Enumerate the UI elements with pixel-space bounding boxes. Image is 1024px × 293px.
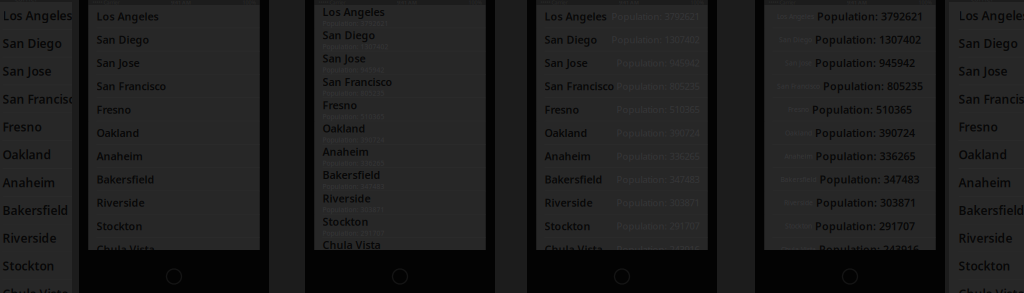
button[interactable]: Chula Vista bbox=[764, 238, 935, 261]
button[interactable]: Oakland bbox=[949, 141, 1024, 169]
button[interactable]: Los Angeles bbox=[88, 5, 259, 28]
staticText: Population: 390724 bbox=[322, 135, 384, 144]
button[interactable]: San Jose bbox=[314, 52, 485, 75]
button[interactable]: San Francisco bbox=[88, 75, 259, 98]
button[interactable]: Anaheim bbox=[536, 145, 707, 168]
staticText: Population: 336265 bbox=[815, 149, 915, 163]
staticText: Population: 243916 bbox=[616, 243, 699, 255]
button[interactable]: Stockton bbox=[949, 252, 1024, 280]
button[interactable]: San Jose bbox=[0, 58, 198, 85]
button[interactable]: San Diego bbox=[88, 28, 259, 52]
button[interactable]: Bakersfield bbox=[0, 197, 198, 224]
button[interactable]: Riverside bbox=[0, 225, 198, 252]
staticText: Oakland bbox=[3, 147, 52, 163]
button[interactable]: San Diego bbox=[764, 28, 935, 52]
button[interactable]: Bakersfield bbox=[88, 168, 259, 191]
button[interactable]: Home bbox=[611, 266, 632, 287]
button[interactable]: San Francisco bbox=[0, 85, 198, 113]
staticText: Bakersfield bbox=[544, 172, 602, 186]
button[interactable]: Fresno bbox=[536, 98, 707, 121]
button[interactable]: Oakland bbox=[88, 121, 259, 145]
staticText: Population: 510365 bbox=[616, 103, 699, 116]
staticText: Chula Vista bbox=[3, 286, 69, 293]
button[interactable]: Bakersfield bbox=[314, 168, 485, 191]
button[interactable]: Stockton bbox=[536, 215, 707, 238]
staticText: Population: 805235 bbox=[322, 89, 384, 98]
button[interactable]: Chula Vista bbox=[949, 280, 1024, 293]
button[interactable]: Anaheim bbox=[764, 145, 935, 168]
button[interactable]: Los Angeles bbox=[536, 5, 707, 28]
staticText: Population: 390724 bbox=[616, 127, 699, 139]
staticText: San Francisco bbox=[544, 79, 614, 93]
staticText: ••••• Carrier bbox=[540, 0, 567, 6]
staticText: Population: 336265 bbox=[322, 159, 384, 168]
button[interactable]: Fresno bbox=[88, 98, 259, 121]
button[interactable]: Bakersfield bbox=[536, 168, 707, 191]
button[interactable]: Anaheim bbox=[314, 145, 485, 168]
staticText: Population: 805235 bbox=[823, 79, 923, 93]
button[interactable]: Riverside bbox=[314, 191, 485, 215]
button[interactable]: Los Angeles bbox=[314, 5, 485, 28]
staticText: Stockton bbox=[96, 219, 142, 233]
button[interactable]: San Francisco bbox=[314, 75, 485, 98]
button[interactable]: San Jose bbox=[764, 52, 935, 75]
staticText: Population: 291707 bbox=[815, 219, 915, 233]
button[interactable]: San Diego bbox=[314, 28, 485, 52]
button[interactable]: Anaheim bbox=[88, 145, 259, 168]
staticText: Los Angeles bbox=[322, 5, 384, 19]
button[interactable]: Home bbox=[839, 266, 860, 287]
button[interactable]: Stockton bbox=[0, 252, 198, 280]
button[interactable]: Fresno bbox=[314, 98, 485, 121]
staticText: San Jose bbox=[96, 56, 139, 70]
button[interactable]: Chula Vista bbox=[0, 280, 198, 293]
button[interactable]: San Francisco bbox=[536, 75, 707, 98]
staticText: Oakland bbox=[785, 128, 812, 137]
button[interactable]: Home bbox=[389, 266, 410, 287]
button[interactable]: Los Angeles bbox=[0, 2, 198, 30]
button[interactable]: Fresno bbox=[764, 98, 935, 121]
button[interactable]: Bakersfield bbox=[949, 197, 1024, 224]
button[interactable]: Home bbox=[163, 266, 184, 287]
button[interactable]: Stockton bbox=[88, 215, 259, 238]
button[interactable]: Fresno bbox=[949, 113, 1024, 141]
button[interactable]: San Jose bbox=[536, 52, 707, 75]
button[interactable]: San Jose bbox=[949, 58, 1024, 85]
button[interactable]: Oakland bbox=[536, 121, 707, 145]
button[interactable]: Riverside bbox=[764, 191, 935, 215]
button[interactable]: Chula Vista bbox=[536, 238, 707, 261]
button[interactable]: Riverside bbox=[536, 191, 707, 215]
button[interactable]: Chula Vista bbox=[314, 238, 485, 261]
button[interactable]: San Diego bbox=[0, 30, 198, 58]
button[interactable]: Oakland bbox=[314, 121, 485, 145]
button[interactable]: San Francisco bbox=[764, 75, 935, 98]
button[interactable]: Riverside bbox=[88, 191, 259, 215]
button[interactable]: Los Angeles bbox=[949, 2, 1024, 30]
button[interactable]: San Francisco bbox=[949, 85, 1024, 113]
staticText: ••••• Carrier bbox=[0, 0, 38, 3]
button[interactable]: Fresno bbox=[0, 113, 198, 141]
button[interactable]: Oakland bbox=[764, 121, 935, 145]
button[interactable]: Riverside bbox=[949, 225, 1024, 252]
button[interactable]: San Diego bbox=[949, 30, 1024, 58]
button[interactable]: Bakersfield bbox=[764, 168, 935, 191]
button[interactable]: Anaheim bbox=[0, 169, 198, 197]
button[interactable]: Los Angeles bbox=[764, 5, 935, 28]
button[interactable]: Anaheim bbox=[949, 169, 1024, 197]
button[interactable]: Stockton bbox=[764, 215, 935, 238]
button[interactable]: Oakland bbox=[0, 141, 198, 169]
staticText: Population: 347483 bbox=[819, 172, 919, 186]
button[interactable]: San Diego bbox=[536, 28, 707, 52]
button[interactable]: Stockton bbox=[314, 215, 485, 238]
button[interactable]: San Jose bbox=[88, 52, 259, 75]
staticText: Population: 945942 bbox=[322, 66, 384, 74]
button[interactable]: Chula Vista bbox=[88, 238, 259, 261]
